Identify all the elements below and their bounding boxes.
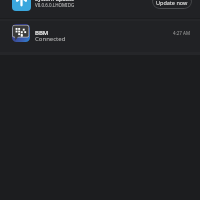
button[interactable]: Update now [152, 0, 192, 9]
staticText: Connected [35, 35, 66, 43]
other: System update [12, 0, 31, 11]
other: BBM [12, 24, 30, 42]
staticText: System update [35, 0, 75, 2]
staticText: BBM [35, 29, 49, 37]
button[interactable]: BBM [0, 21, 200, 52]
staticText: Update now [156, 0, 188, 6]
staticText: 4:27 AM [173, 30, 191, 36]
button[interactable]: System update [0, 0, 200, 18]
staticText: V8.0.6.0.LHOMIDG [35, 2, 75, 8]
